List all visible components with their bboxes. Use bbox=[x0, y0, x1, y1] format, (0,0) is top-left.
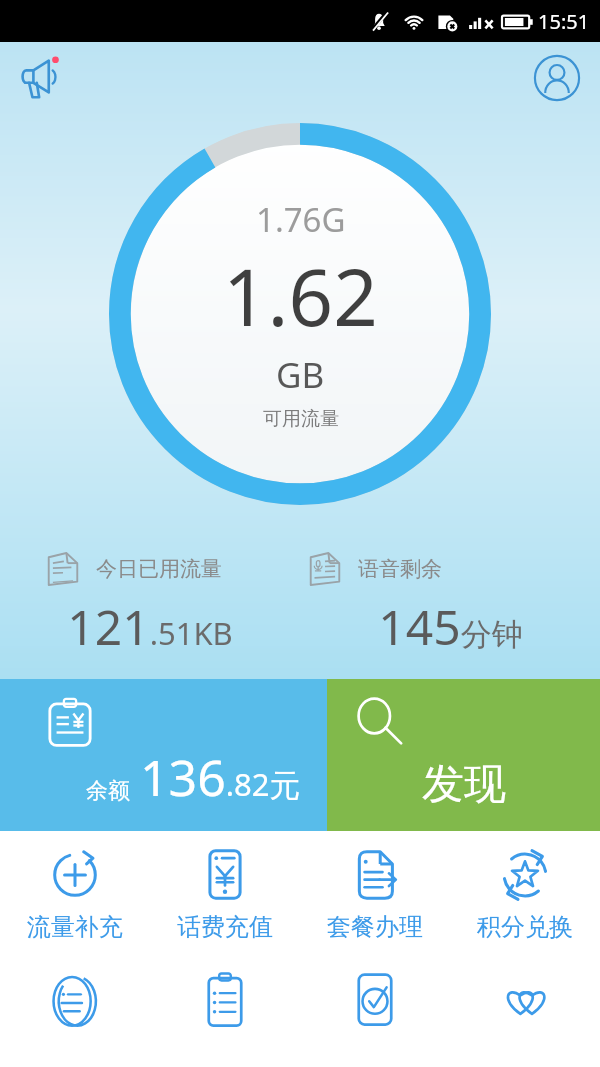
button[interactable]: Order list bbox=[150, 967, 300, 1031]
staticText: 套餐办理 bbox=[327, 912, 423, 942]
button[interactable]: 今日已用流量 bbox=[0, 548, 300, 659]
staticText: 流量补充 bbox=[27, 912, 123, 942]
button[interactable]: 余额 bbox=[0, 679, 327, 831]
staticText: 145分钟 bbox=[378, 594, 523, 659]
button[interactable]: 发现 bbox=[327, 679, 600, 831]
button[interactable]: Favourites bbox=[450, 967, 600, 1031]
staticText: 15:51 bbox=[538, 8, 590, 35]
button[interactable]: Profile bbox=[528, 49, 586, 107]
button[interactable]: 语音剩余 bbox=[300, 548, 600, 659]
staticText: 今日已用流量 bbox=[96, 556, 222, 582]
button[interactable]: 话费充值 bbox=[150, 843, 300, 945]
button[interactable]: Verification bbox=[300, 967, 450, 1031]
staticText: 可用流量 bbox=[263, 407, 339, 431]
staticText: 余额 bbox=[86, 777, 130, 805]
staticText: 发现 bbox=[422, 758, 506, 811]
button[interactable]: 套餐办理 bbox=[300, 843, 450, 945]
staticText: 语音剩余 bbox=[358, 556, 442, 582]
button[interactable]: Business inquiry bbox=[0, 967, 150, 1031]
staticText: 话费充值 bbox=[177, 912, 273, 942]
staticText: 积分兑换 bbox=[477, 912, 573, 942]
button[interactable]: Announcements bbox=[14, 49, 72, 107]
staticText: 121.51KB bbox=[67, 594, 233, 659]
button[interactable]: 流量补充 bbox=[0, 843, 150, 945]
staticText: GB bbox=[276, 351, 325, 399]
staticText: 136.82元 bbox=[140, 743, 301, 811]
staticText: 1.62 bbox=[223, 243, 378, 349]
button[interactable]: 积分兑换 bbox=[450, 843, 600, 945]
staticText: 1.76G bbox=[256, 197, 346, 242]
